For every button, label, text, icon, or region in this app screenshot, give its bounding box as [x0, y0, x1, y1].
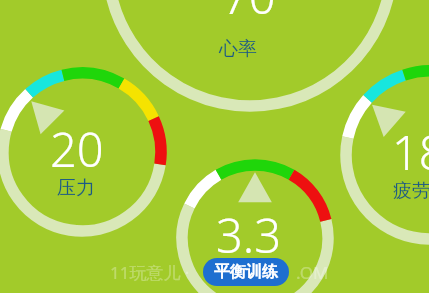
- staticText: 11玩意儿 ·: [110, 261, 190, 284]
- staticText: 压力: [57, 176, 95, 200]
- staticText: 70: [222, 0, 276, 28]
- staticText: 平衡训练: [214, 262, 278, 282]
- staticText: 疲劳: [393, 179, 429, 203]
- button[interactable]: 疲劳: [393, 179, 429, 203]
- staticText: 心率: [219, 37, 257, 61]
- button[interactable]: 压力: [57, 176, 95, 200]
- staticText: .OM: [296, 261, 329, 284]
- staticText: 20: [50, 117, 104, 181]
- staticText: 3.3: [216, 203, 282, 267]
- staticText: 18: [392, 120, 429, 184]
- button[interactable]: 平衡训练: [203, 258, 289, 286]
- button[interactable]: 心率: [219, 37, 257, 61]
